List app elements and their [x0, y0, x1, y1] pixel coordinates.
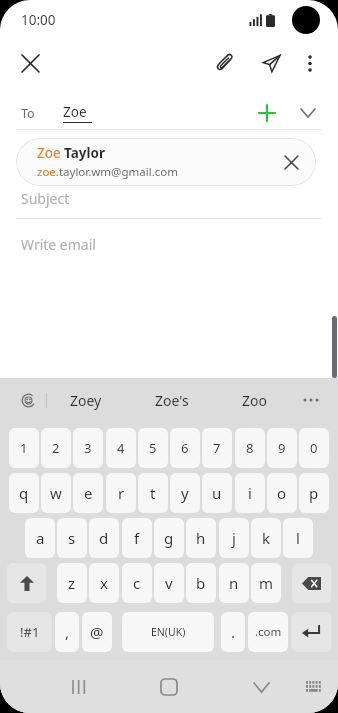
staticText: 0 [310, 439, 318, 457]
button[interactable]: Enter [291, 612, 331, 652]
button[interactable]: Add recipient [250, 96, 284, 130]
staticText: l [296, 528, 300, 548]
button[interactable]: @ [82, 612, 112, 652]
button[interactable]: Remove recipient [276, 147, 306, 177]
button[interactable]: Keyboard settings [295, 668, 333, 706]
button[interactable]: 5 [138, 428, 168, 468]
staticText: @ [90, 622, 104, 642]
button[interactable]: EN(UK) [122, 612, 214, 652]
staticText: t [150, 483, 156, 503]
staticText: a [36, 528, 45, 548]
button[interactable]: Shift [7, 563, 46, 603]
staticText: d [99, 528, 109, 548]
button[interactable]: Zoe's [146, 382, 198, 418]
button[interactable]: Send [253, 45, 289, 81]
button[interactable]: e [73, 473, 103, 513]
staticText: Zoe [63, 103, 87, 121]
staticText: Subject [21, 189, 70, 208]
button[interactable]: z [57, 563, 87, 603]
button[interactable]: d [89, 518, 119, 558]
button[interactable]: Zoey [60, 382, 112, 418]
button[interactable]: 6 [170, 428, 200, 468]
button[interactable]: 8 [235, 428, 265, 468]
button[interactable]: Recents [58, 667, 98, 707]
button[interactable]: Close [12, 45, 48, 81]
button[interactable]: 9 [267, 428, 297, 468]
button[interactable]: 1 [9, 428, 39, 468]
button[interactable]: .com [248, 612, 288, 652]
button[interactable]: , [55, 612, 79, 652]
staticText: , [65, 622, 70, 642]
staticText: 9 [278, 439, 286, 457]
staticText: !#1 [20, 623, 40, 641]
button[interactable]: Backspace [292, 563, 331, 603]
button[interactable]: More suggestions [296, 385, 326, 415]
staticText: h [196, 528, 206, 548]
button[interactable]: a [25, 518, 55, 558]
staticText: 8 [246, 439, 254, 457]
button[interactable]: 7 [202, 428, 232, 468]
button[interactable]: j [219, 518, 249, 558]
staticText: e [84, 483, 93, 503]
button[interactable]: v [154, 563, 184, 603]
staticText: o [277, 483, 287, 503]
staticText: u [212, 483, 222, 503]
staticText: q [19, 483, 29, 503]
staticText: .com [255, 624, 282, 640]
button[interactable]: h [186, 518, 216, 558]
staticText: m [259, 573, 274, 593]
button[interactable]: r [106, 473, 136, 513]
button[interactable]: Attach [207, 45, 243, 81]
button[interactable]: Hide keyboard [241, 667, 281, 707]
button[interactable]: i [235, 473, 265, 513]
button[interactable]: . [221, 612, 245, 652]
button[interactable]: Expand [291, 96, 325, 130]
staticText: w [50, 483, 62, 503]
staticText: 7 [213, 439, 221, 457]
button[interactable]: n [219, 563, 249, 603]
button[interactable]: l [283, 518, 313, 558]
staticText: r [118, 483, 125, 503]
button[interactable]: k [251, 518, 281, 558]
staticText: c [133, 573, 141, 593]
button[interactable]: c [122, 563, 152, 603]
button[interactable]: Home [147, 665, 191, 709]
button[interactable]: p [299, 473, 329, 513]
button[interactable]: b [186, 563, 216, 603]
staticText: i [248, 483, 252, 503]
button[interactable]: s [57, 518, 87, 558]
button[interactable]: m [251, 563, 281, 603]
button[interactable]: u [202, 473, 232, 513]
button[interactable]: w [41, 473, 71, 513]
button[interactable]: y [170, 473, 200, 513]
button[interactable]: 2 [41, 428, 71, 468]
button[interactable]: x [89, 563, 119, 603]
button[interactable]: 0 [299, 428, 329, 468]
button[interactable]: 3 [73, 428, 103, 468]
staticText: Zoe's [155, 391, 189, 410]
button[interactable]: q [9, 473, 39, 513]
button[interactable]: Zoe Taylor [16, 138, 316, 186]
staticText: y [181, 483, 189, 503]
button[interactable]: !#1 [7, 612, 52, 652]
button[interactable]: More options [293, 46, 327, 80]
button[interactable]: f [122, 518, 152, 558]
staticText: s [68, 528, 76, 548]
button[interactable]: Emoji [14, 386, 42, 414]
staticText: b [196, 573, 206, 593]
staticText: x [100, 573, 108, 593]
staticText: Zoey [70, 391, 102, 410]
staticText: v [165, 573, 173, 593]
button[interactable]: Zoo [228, 382, 280, 418]
button[interactable]: t [138, 473, 168, 513]
staticText: n [229, 573, 239, 593]
button[interactable]: g [154, 518, 184, 558]
staticText: Write email [21, 235, 96, 254]
button[interactable]: o [267, 473, 297, 513]
button[interactable]: 4 [106, 428, 136, 468]
staticText: EN(UK) [151, 625, 186, 639]
staticText: p [309, 483, 319, 503]
staticText: f [134, 528, 140, 548]
staticText: g [164, 528, 174, 548]
staticText: 1 [20, 439, 28, 457]
